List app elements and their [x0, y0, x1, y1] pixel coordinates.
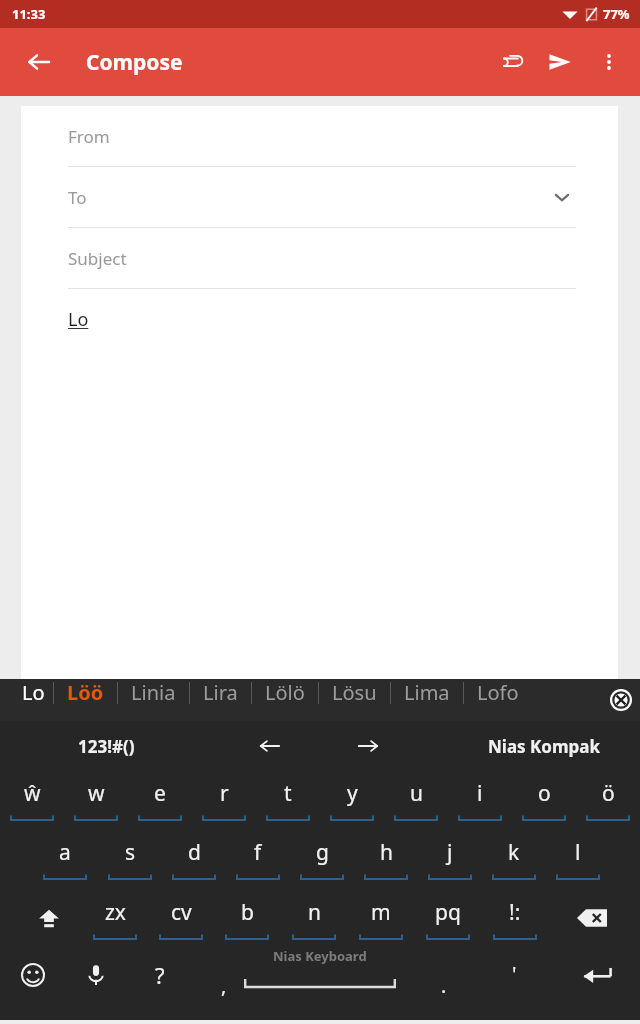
button[interactable]: Emoji — [10, 952, 56, 998]
staticText: l — [575, 838, 581, 867]
button[interactable]: u — [384, 771, 448, 828]
button[interactable]: To — [21, 167, 618, 227]
button[interactable]: zx — [82, 888, 148, 948]
button[interactable]: Move cursor left — [248, 724, 292, 768]
button[interactable]: j — [418, 828, 482, 888]
staticText: m — [371, 898, 391, 927]
staticText: j — [447, 838, 453, 867]
button[interactable]: o — [512, 771, 576, 828]
button[interactable]: Close suggestions — [606, 685, 636, 715]
button[interactable]: Lira — [203, 679, 238, 706]
button[interactable]: ' — [496, 955, 532, 991]
staticText: zx — [105, 898, 126, 927]
button[interactable]: r — [192, 771, 256, 828]
staticText: e — [154, 779, 166, 808]
staticText: u — [410, 779, 423, 808]
staticText: Lo — [22, 679, 45, 706]
staticText: Lösu — [332, 679, 377, 706]
button[interactable]: Space — [220, 947, 420, 991]
staticText: ŵ — [24, 779, 41, 808]
button[interactable]: More options — [586, 39, 632, 85]
staticText: Subject — [68, 247, 127, 270]
button[interactable]: Subject — [21, 228, 618, 288]
staticText: Löö — [67, 679, 104, 706]
button[interactable]: cv — [148, 888, 214, 948]
button[interactable]: ? — [140, 955, 180, 995]
staticText: 77% — [603, 5, 630, 23]
button[interactable]: From — [21, 106, 618, 166]
button[interactable]: k — [482, 828, 546, 888]
button[interactable]: Nias Kompak — [488, 735, 600, 758]
staticText: pq — [435, 898, 461, 927]
staticText: Lofo — [477, 679, 519, 706]
button[interactable]: y — [320, 771, 384, 828]
staticText: Lölö — [265, 679, 305, 706]
button[interactable]: Backspace — [566, 892, 618, 944]
staticText: o — [538, 779, 551, 808]
button[interactable]: !: — [481, 888, 548, 948]
button[interactable]: Löö — [67, 679, 104, 706]
button[interactable]: , — [206, 967, 242, 1003]
button[interactable]: w — [64, 771, 128, 828]
staticText: h — [380, 838, 393, 867]
staticText: ? — [155, 960, 165, 990]
button[interactable]: Shift — [24, 893, 74, 943]
staticText: Nias Keyboard — [273, 947, 367, 965]
button[interactable]: pq — [414, 888, 481, 948]
button[interactable]: n — [280, 888, 347, 948]
staticText: a — [59, 838, 71, 867]
button[interactable]: d — [162, 828, 226, 888]
button[interactable]: Back — [14, 37, 64, 87]
button[interactable]: l — [546, 828, 610, 888]
staticText: Compose — [86, 48, 183, 77]
button[interactable]: Send — [536, 38, 584, 86]
button[interactable]: Linia — [131, 679, 176, 706]
staticText: k — [508, 838, 520, 867]
button[interactable]: Lofo — [477, 679, 519, 706]
button[interactable]: a — [32, 828, 97, 888]
button[interactable]: g — [290, 828, 354, 888]
button[interactable]: f — [226, 828, 290, 888]
button[interactable]: h — [354, 828, 418, 888]
staticText: s — [125, 838, 136, 867]
button[interactable]: Move cursor right — [346, 724, 390, 768]
staticText: Lo — [68, 307, 89, 332]
staticText: d — [188, 838, 201, 867]
staticText: f — [254, 838, 262, 867]
button[interactable]: t — [256, 771, 320, 828]
button[interactable]: Expand recipients — [548, 183, 576, 211]
staticText: i — [477, 779, 483, 808]
staticText: t — [284, 779, 292, 808]
staticText: From — [68, 125, 110, 148]
button[interactable]: i — [448, 771, 512, 828]
staticText: 11:33 — [12, 5, 46, 23]
button[interactable]: m — [347, 888, 414, 948]
staticText: b — [241, 898, 254, 927]
staticText: cv — [171, 898, 192, 927]
button[interactable]: b — [214, 888, 280, 948]
button[interactable]: ö — [576, 771, 640, 828]
staticText: n — [308, 898, 321, 927]
button[interactable]: Voice input — [74, 953, 118, 997]
staticText: , — [221, 972, 227, 999]
button[interactable]: Lölö — [265, 679, 305, 706]
staticText: Linia — [131, 679, 176, 706]
staticText: Nias Kompak — [488, 735, 600, 758]
staticText: g — [316, 838, 329, 867]
button[interactable]: 123!#() — [78, 735, 135, 758]
button[interactable]: ŵ — [0, 771, 64, 828]
staticText: Lima — [404, 679, 450, 706]
button[interactable]: e — [128, 771, 192, 828]
button[interactable]: Attach — [486, 38, 534, 86]
staticText: y — [347, 779, 358, 808]
button[interactable]: s — [97, 828, 162, 888]
button[interactable]: Enter — [572, 949, 624, 1001]
button[interactable]: Lima — [404, 679, 450, 706]
staticText: Lira — [203, 679, 238, 706]
button[interactable]: Lo — [21, 289, 618, 349]
button[interactable]: Lösu — [332, 679, 377, 706]
staticText: . — [441, 972, 447, 999]
button[interactable]: . — [426, 967, 462, 1003]
button[interactable]: Lo — [22, 679, 45, 706]
staticText: To — [68, 186, 87, 209]
